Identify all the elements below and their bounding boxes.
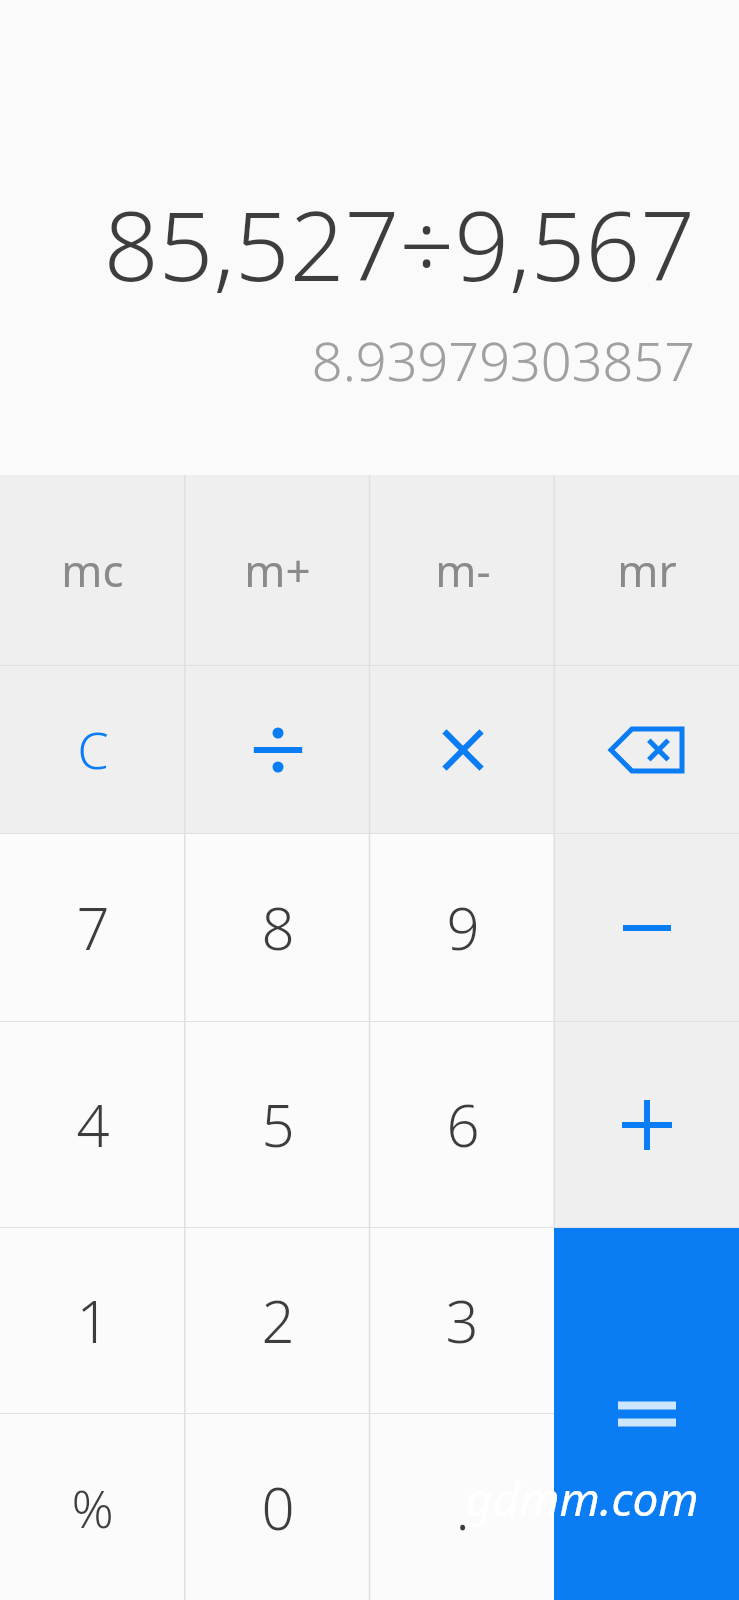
button[interactable]: C — [0, 666, 185, 833]
staticText: % — [71, 1472, 114, 1543]
staticText: C — [77, 716, 109, 784]
button[interactable]: . — [370, 1414, 554, 1600]
button[interactable]: 8 — [185, 834, 370, 1021]
button[interactable]: 1 — [0, 1228, 185, 1413]
button[interactable]: Multiply — [370, 666, 555, 833]
button[interactable]: 0 — [185, 1414, 370, 1600]
button[interactable]: Add — [555, 1022, 739, 1227]
staticText: 7 — [76, 888, 110, 967]
button[interactable]: 4 — [0, 1022, 185, 1227]
button[interactable]: mc — [0, 475, 185, 665]
staticText: 4 — [76, 1085, 110, 1164]
button[interactable]: % — [0, 1414, 185, 1600]
staticText: 0 — [261, 1468, 295, 1547]
staticText: 9 — [446, 888, 480, 967]
staticText: 6 — [446, 1085, 480, 1164]
button[interactable]: Backspace — [555, 666, 739, 833]
button[interactable]: 6 — [370, 1022, 555, 1227]
staticText: 85,527÷9,567 — [0, 178, 695, 309]
button[interactable]: 7 — [0, 834, 185, 1021]
button[interactable]: mr — [555, 475, 739, 665]
button[interactable]: m- — [370, 475, 555, 665]
button[interactable]: Equals — [554, 1228, 739, 1600]
button[interactable]: 9 — [370, 834, 555, 1021]
button[interactable]: 5 — [185, 1022, 370, 1227]
button[interactable]: Divide — [185, 666, 370, 833]
staticText: 2 — [261, 1281, 295, 1360]
staticText: 8.93979303857 — [0, 323, 695, 397]
staticText: m+ — [244, 540, 311, 600]
staticText: m- — [435, 540, 491, 600]
staticText: 8 — [261, 888, 295, 967]
button[interactable]: Subtract — [555, 834, 739, 1021]
staticText: 1 — [76, 1281, 110, 1360]
staticText: mc — [61, 540, 124, 600]
staticText: 5 — [261, 1085, 295, 1164]
button[interactable]: m+ — [185, 475, 370, 665]
staticText: mr — [617, 540, 677, 600]
staticText: . — [455, 1468, 470, 1547]
staticText: gdmm.com — [466, 1467, 699, 1530]
staticText: 3 — [445, 1281, 479, 1360]
button[interactable]: 2 — [185, 1228, 370, 1413]
button[interactable]: 3 — [370, 1228, 554, 1413]
